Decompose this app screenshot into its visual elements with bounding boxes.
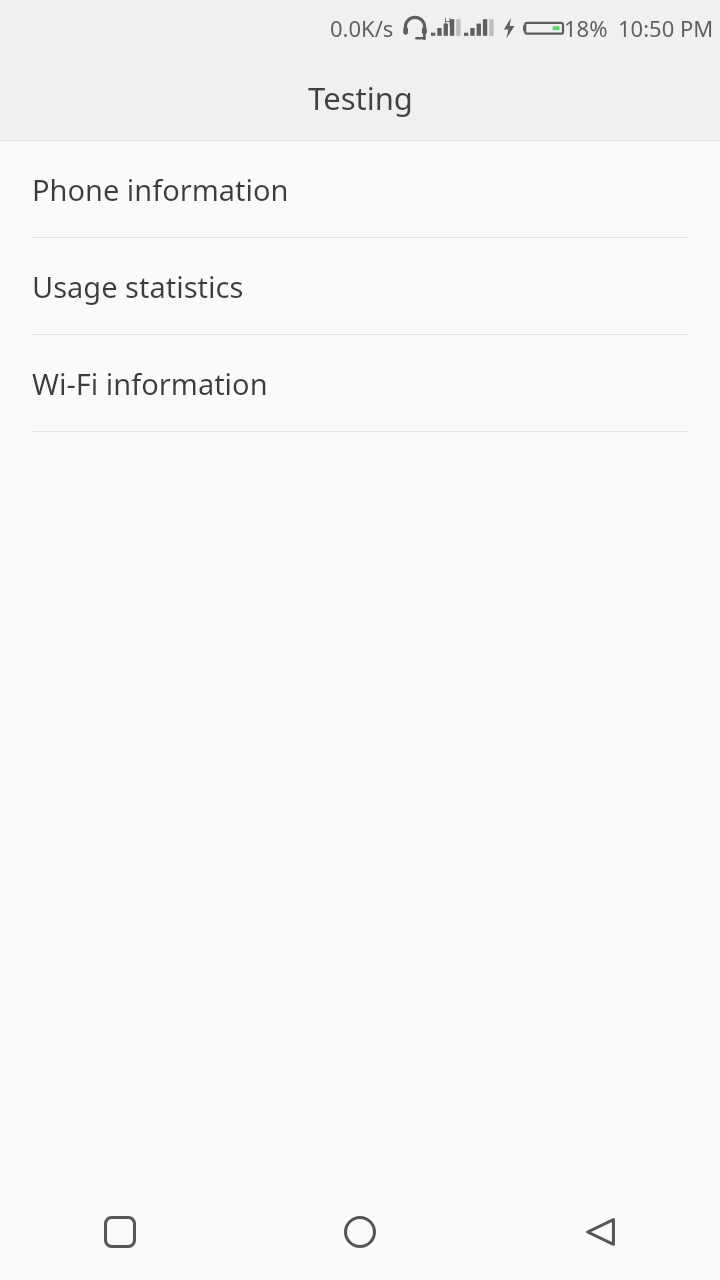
staticText: Testing xyxy=(308,77,413,119)
staticText: 18% xyxy=(564,13,608,43)
staticText: H xyxy=(444,15,452,29)
staticText: Wi-Fi information xyxy=(32,364,268,403)
button[interactable]: Back xyxy=(480,1184,720,1280)
staticText: Usage statistics xyxy=(32,267,244,306)
button[interactable]: Home xyxy=(240,1184,480,1280)
staticText: Phone information xyxy=(32,170,289,209)
button[interactable]: Usage statistics xyxy=(0,238,720,334)
staticText: 0.0K/s xyxy=(330,13,394,43)
button[interactable]: Recent apps xyxy=(0,1184,240,1280)
button[interactable]: Phone information xyxy=(0,141,720,237)
staticText: 10:50 PM xyxy=(618,13,714,43)
button[interactable]: Wi-Fi information xyxy=(0,335,720,431)
